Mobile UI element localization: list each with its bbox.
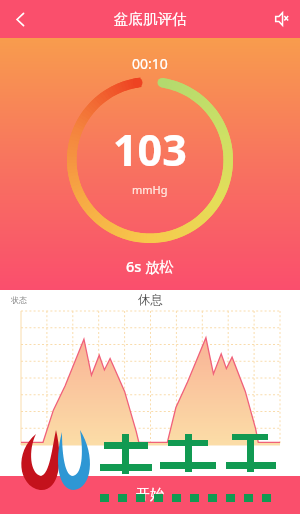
button[interactable]: 开始 [0, 476, 300, 514]
staticText: 状态 [11, 295, 27, 305]
staticText: 6s 放松 [126, 256, 175, 276]
staticText: 00:10 [132, 54, 168, 73]
staticText: 开始 [136, 486, 164, 504]
staticText: mmHg [132, 182, 168, 197]
staticText: 盆底肌评估 [114, 10, 187, 28]
staticText: 103 [113, 120, 187, 179]
staticText: 休息 [138, 292, 163, 308]
button[interactable]: Back [0, 0, 40, 38]
button[interactable]: Mute sound [260, 0, 300, 38]
